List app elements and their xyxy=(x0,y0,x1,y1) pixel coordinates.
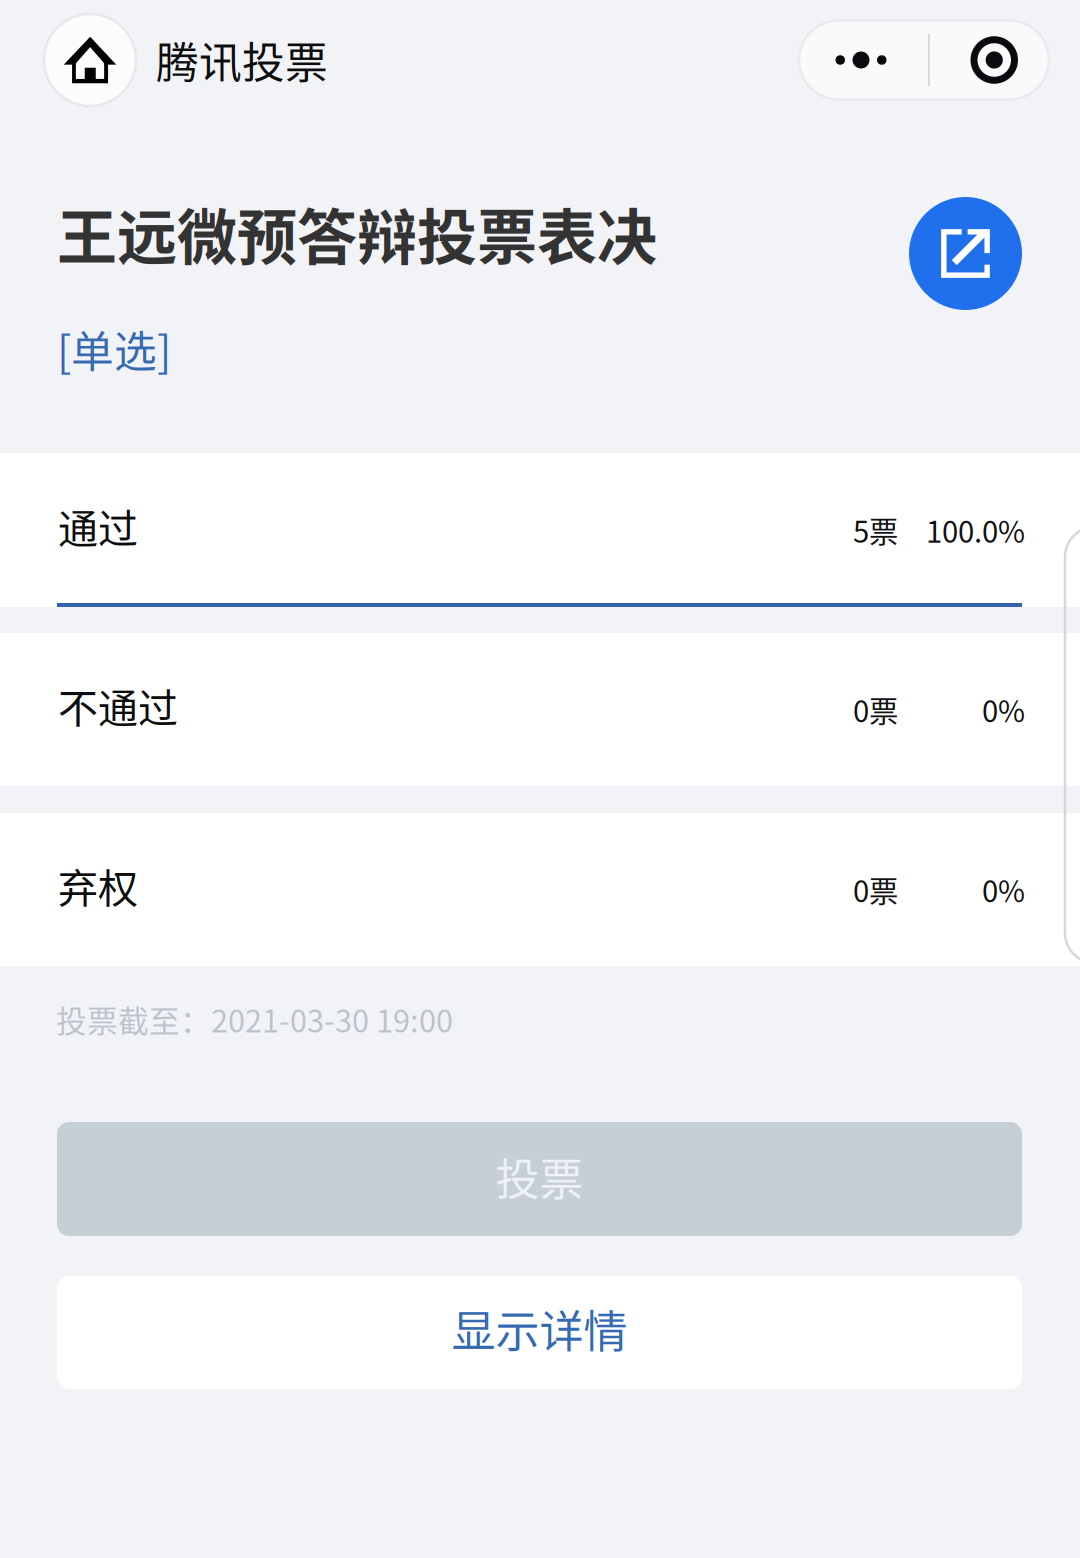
button[interactable]: More options xyxy=(799,20,1049,99)
staticText: 弃权 xyxy=(58,856,138,914)
staticText: 投票截至：2021-03-30 19:00 xyxy=(56,997,453,1041)
staticText: 0% xyxy=(982,688,1025,731)
staticText: 100.0% xyxy=(926,509,1025,551)
staticText: 5票 xyxy=(853,509,898,551)
staticText: 腾讯投票 xyxy=(156,29,328,91)
button[interactable]: Open externally xyxy=(909,197,1022,310)
staticText: 显示详情 xyxy=(451,1297,627,1360)
button[interactable]: 不通过 xyxy=(0,633,1080,786)
staticText: 投票 xyxy=(495,1145,583,1208)
staticText: 王远微预答辩投票表决 xyxy=(57,190,657,277)
staticText: 不通过 xyxy=(58,676,178,734)
staticText: 0票 xyxy=(853,868,898,911)
staticText: 0% xyxy=(982,868,1025,911)
staticText: [单选] xyxy=(57,318,171,380)
button[interactable]: 弃权 xyxy=(0,813,1080,966)
button[interactable]: Home xyxy=(44,14,136,106)
staticText: 0票 xyxy=(853,688,898,731)
button[interactable]: 显示详情 xyxy=(57,1276,1022,1389)
button[interactable]: 投票 xyxy=(57,1122,1022,1236)
button[interactable]: 通过 xyxy=(0,453,1080,607)
staticText: 通过 xyxy=(58,497,138,555)
